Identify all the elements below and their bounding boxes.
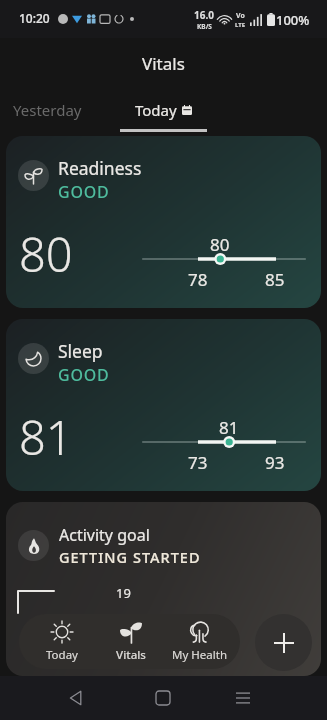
staticText: Vo [236, 11, 245, 21]
staticText: Vitals [142, 52, 185, 75]
staticText: GOOD [58, 364, 110, 386]
staticText: 73 [188, 451, 208, 474]
staticText: 19 [116, 584, 131, 602]
staticText: 93 [265, 451, 285, 474]
staticText: Activity goal [59, 524, 150, 546]
staticText: Today [46, 647, 78, 663]
staticText: 81 [19, 405, 73, 469]
staticText: 78 [188, 268, 208, 291]
button[interactable]: Add [255, 614, 312, 671]
staticText: GETTING STARTED [59, 547, 201, 567]
button[interactable]: Sleep [6, 319, 321, 491]
staticText: My Health [172, 647, 227, 663]
staticText: 80 [210, 233, 230, 256]
staticText: 85 [265, 268, 285, 291]
button[interactable]: My Health [163, 614, 235, 669]
button[interactable]: Vitals [95, 614, 167, 669]
staticText: Yesterday [13, 100, 82, 120]
staticText: Readiness [58, 156, 142, 180]
button[interactable]: Activity goal [6, 502, 321, 676]
button[interactable]: Yesterday [0, 88, 134, 132]
staticText: Vitals [116, 647, 146, 663]
staticText: 10:20 [19, 10, 50, 26]
staticText: LTE [235, 21, 246, 29]
button[interactable]: Readiness [6, 136, 321, 308]
staticText: KB/S [197, 22, 212, 31]
staticText: Today [135, 100, 177, 120]
staticText: 16.0 [194, 8, 214, 22]
staticText: 100% [276, 11, 310, 29]
staticText: Sleep [58, 339, 103, 363]
button[interactable]: Today [26, 614, 98, 669]
staticText: 81 [219, 416, 239, 439]
staticText: 80 [19, 222, 73, 286]
button[interactable]: Today [120, 88, 207, 132]
staticText: GOOD [58, 181, 110, 203]
